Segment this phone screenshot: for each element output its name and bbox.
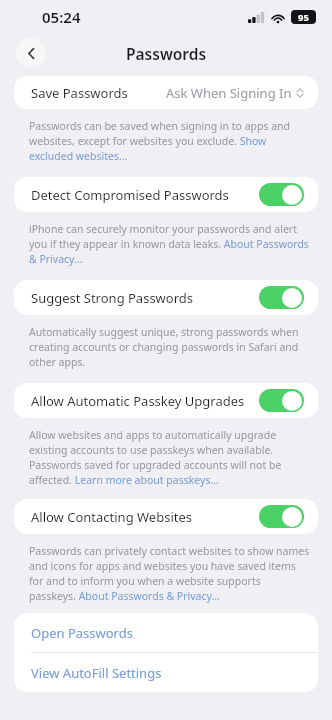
staticText: Allow Automatic Passkey Upgrades <box>31 392 259 410</box>
staticText: iPhone can securely monitor your passwor… <box>29 222 310 266</box>
staticText: Passwords can privately contact websites… <box>29 544 310 603</box>
button[interactable]: Back <box>16 38 46 68</box>
staticText: 05:24 <box>42 7 81 27</box>
staticText: Allow Contacting Websites <box>31 508 259 526</box>
button[interactable]: Toggle on <box>259 183 304 206</box>
button[interactable]: Toggle on <box>259 389 304 412</box>
button[interactable]: Suggest Strong Passwords <box>14 280 318 315</box>
staticText: Passwords can be saved when signing in t… <box>29 119 310 163</box>
staticText: Detect Compromised Passwords <box>31 186 259 204</box>
button[interactable]: Toggle on <box>259 505 304 528</box>
staticText: Save Passwords <box>31 84 128 102</box>
button[interactable]: Save Passwords <box>14 76 318 109</box>
staticText: Ask When Signing In <box>166 84 292 102</box>
staticText: Passwords <box>126 43 207 64</box>
button[interactable]: Toggle on <box>259 286 304 309</box>
button[interactable]: Allow Automatic Passkey Upgrades <box>14 383 318 418</box>
staticText: Suggest Strong Passwords <box>31 289 259 307</box>
staticText: 95 <box>298 11 309 24</box>
staticText: Open Passwords <box>31 624 133 642</box>
button[interactable]: View AutoFill Settings <box>14 653 318 692</box>
staticText: Allow websites and apps to automatically… <box>29 428 310 487</box>
button[interactable]: Detect Compromised Passwords <box>14 177 318 212</box>
button[interactable]: Open Passwords <box>14 613 318 652</box>
staticText: View AutoFill Settings <box>31 664 162 682</box>
button[interactable]: Allow Contacting Websites <box>14 499 318 534</box>
staticText: Automatically suggest unique, strong pas… <box>29 325 310 369</box>
